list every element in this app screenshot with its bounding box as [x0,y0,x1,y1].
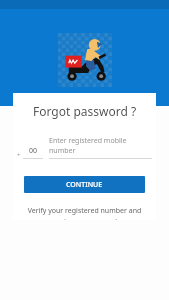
staticText: Forgot password ? [33,103,137,119]
staticText: Verify your registered number and reset … [23,206,146,220]
staticText: + [17,151,21,159]
staticText: 00 [29,146,38,156]
staticText: CONTINUE [66,180,103,190]
staticText: Enter registered mobile number [49,136,152,156]
button[interactable]: CONTINUE [24,176,145,193]
